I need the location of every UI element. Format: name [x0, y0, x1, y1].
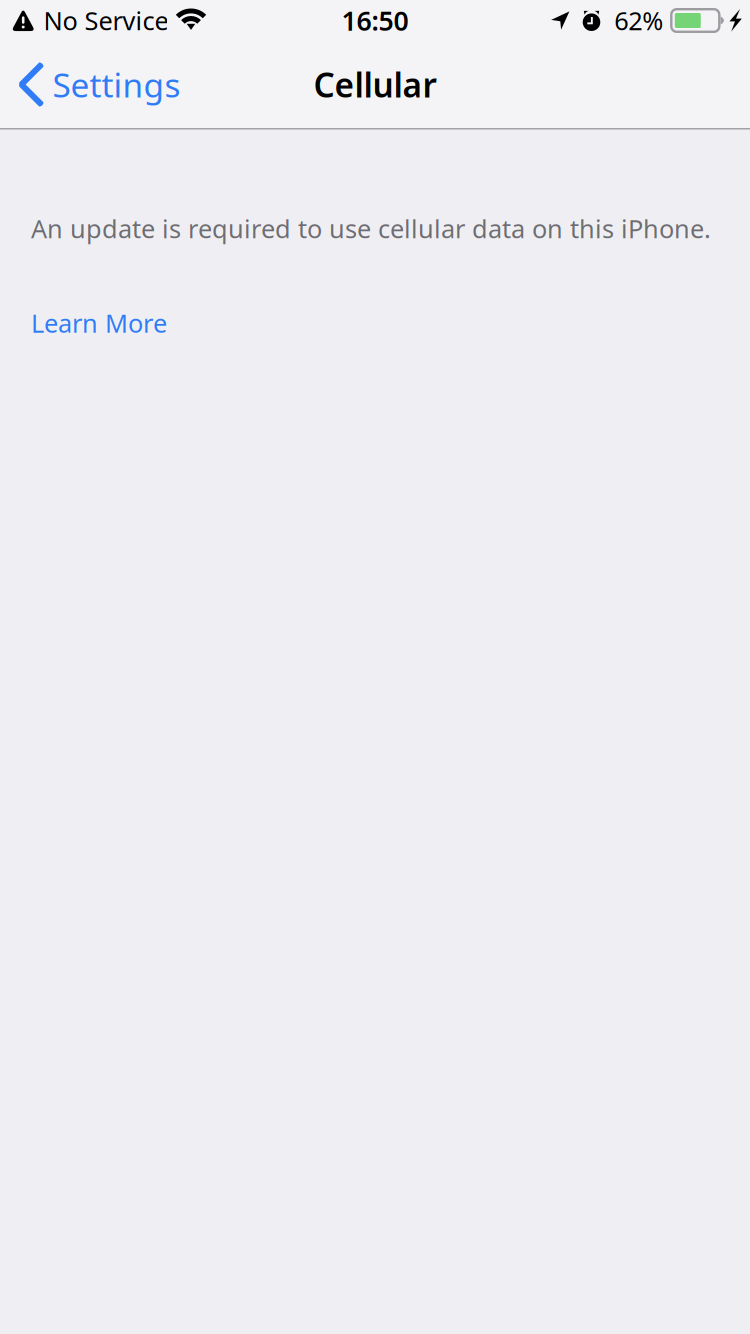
- staticText: Settings: [53, 62, 181, 107]
- button[interactable]: Learn More: [0, 245, 750, 360]
- staticText: No Service: [43, 4, 168, 37]
- staticText: Cellular: [313, 62, 436, 107]
- staticText: Learn More: [31, 306, 167, 340]
- staticText: An update is required to use cellular da…: [31, 211, 711, 245]
- staticText: 16:50: [341, 3, 408, 38]
- staticText: 62%: [614, 4, 663, 37]
- button[interactable]: Settings: [0, 41, 195, 128]
